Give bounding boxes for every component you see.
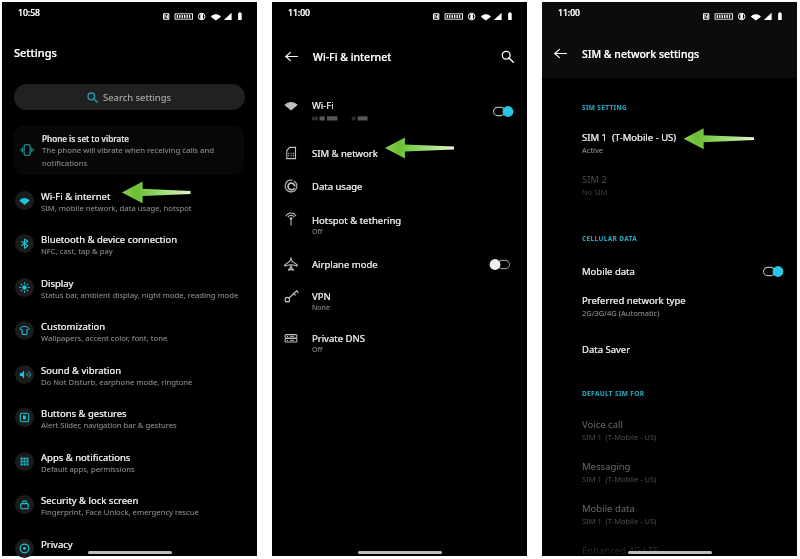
button[interactable]: Apps & notifications (2, 445, 257, 481)
staticText: SIM 1 (T-Mobile - US) (582, 474, 657, 484)
button[interactable]: VPN (272, 282, 527, 320)
staticText: Buttons & gestures (41, 407, 127, 420)
staticText: Mobile data (582, 502, 635, 515)
staticText: CELLULAR DATA (582, 234, 638, 243)
button[interactable]: Security & lock screen (2, 488, 257, 524)
staticText: SIM 1 (T-Mobile - US) (582, 432, 657, 442)
staticText: Wallpapers, accent color, font, tone (41, 333, 168, 343)
button[interactable]: On (493, 105, 514, 118)
staticText: VPN (312, 290, 331, 303)
staticText: Hotspot & tethering (312, 214, 402, 227)
button[interactable]: Customization (2, 314, 257, 350)
button[interactable]: Phone is set to vibrate (13, 125, 244, 175)
button[interactable]: Data Saver (542, 338, 797, 360)
staticText: Data Saver (582, 343, 631, 356)
staticText: 10:58 (18, 7, 41, 19)
staticText: SIM 1 (T-Mobile - US) (582, 516, 657, 526)
staticText: None (312, 303, 330, 313)
staticText: Voice call (582, 418, 623, 431)
button[interactable]: Sound & vibration (2, 358, 257, 394)
staticText: Fingerprint, Face Unlock, emergency resc… (41, 507, 199, 517)
staticText: Messaging (582, 460, 631, 473)
staticText: SIM & network (312, 147, 378, 160)
button[interactable]: Display (2, 271, 257, 307)
button[interactable]: Private DNS (272, 323, 527, 361)
staticText: Status bar, ambient display, night mode,… (41, 290, 239, 300)
staticText: 11:00 (558, 7, 581, 19)
staticText: Wi-Fi & internet (313, 50, 392, 64)
staticText: 2G/3G/4G (Automatic) (582, 308, 660, 318)
button[interactable]: Hotspot & tethering (272, 206, 527, 244)
staticText: Mobile data (582, 265, 635, 278)
button[interactable]: Voice call (542, 416, 797, 448)
staticText: DEFAULT SIM FOR (582, 389, 645, 398)
staticText: SIM SETTING (582, 103, 628, 112)
staticText: Wi-Fi & internet (41, 190, 111, 203)
staticText: SIM 1 (T-Mobile - US) (582, 131, 677, 144)
button[interactable]: Search (493, 42, 521, 70)
staticText: Customization (41, 320, 106, 333)
staticText: SIM & network settings (582, 47, 700, 61)
button[interactable]: Airplane mode (272, 245, 527, 283)
staticText: Do Not Disturb, earphone mode, ringtone (41, 377, 193, 387)
staticText: Bluetooth & device connection (41, 233, 178, 246)
button[interactable]: SIM 2 (542, 171, 797, 203)
button[interactable]: SIM & network (272, 133, 527, 171)
staticText: SIM, mobile network, data usage, hotspot (41, 203, 192, 213)
staticText: Alert Slider, navigation bar & gestures (41, 420, 177, 430)
staticText: Off (312, 227, 323, 237)
staticText: Security & lock screen (41, 494, 139, 507)
staticText: Data usage (312, 180, 363, 193)
button[interactable]: Back (546, 39, 574, 67)
button[interactable]: Mobile data (542, 500, 797, 532)
button[interactable]: Wi-Fi & internet (2, 184, 257, 220)
staticText: Display (41, 277, 74, 290)
staticText: The phone will vibrate when receiving ca… (42, 145, 215, 168)
staticText: No SIM (582, 187, 608, 197)
staticText: Privacy (41, 538, 73, 551)
button[interactable]: Bluetooth & device connection (2, 227, 257, 263)
button[interactable]: Wi-Fi (272, 92, 527, 130)
button[interactable]: Search settings (14, 84, 245, 110)
staticText: Apps & notifications (41, 451, 131, 464)
staticText: Settings (14, 45, 57, 60)
button[interactable]: Back (277, 42, 305, 70)
button[interactable]: Mobile data (542, 259, 797, 283)
button[interactable]: SIM 1 (T-Mobile - US) (542, 129, 797, 161)
staticText: Airplane mode (312, 258, 378, 271)
staticText: Sound & vibration (41, 364, 122, 377)
staticText: Default apps, permissions (41, 464, 135, 474)
staticText: 11:00 (288, 7, 311, 19)
button[interactable]: Data usage (272, 166, 527, 204)
staticText: Off (312, 345, 323, 355)
staticText: Preferred network type (582, 294, 686, 307)
staticText: Active (582, 145, 604, 155)
staticText: SIM 2 (582, 173, 607, 186)
staticText: Wi-Fi (312, 99, 334, 112)
button[interactable]: Messaging (542, 458, 797, 490)
staticText: Enhanced 4G LTE (582, 544, 659, 557)
staticText: Search settings (103, 91, 172, 104)
button[interactable]: On (763, 265, 784, 278)
button[interactable]: Preferred network type (542, 292, 797, 324)
staticText: Private DNS (312, 332, 365, 345)
button[interactable]: Off (489, 258, 510, 271)
staticText: NFC, cast, tap & pay (41, 246, 113, 256)
staticText: Phone is set to vibrate (42, 133, 130, 144)
button[interactable]: Privacy (2, 532, 257, 559)
button[interactable]: Buttons & gestures (2, 401, 257, 437)
